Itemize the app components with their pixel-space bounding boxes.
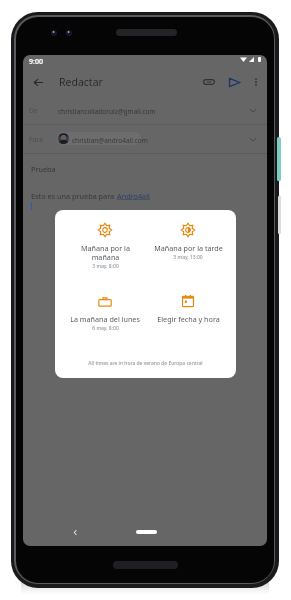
staticText: Mañana por la mañana (81, 243, 130, 262)
staticText: 6 may, 8:00 (92, 325, 119, 332)
button[interactable]: Home (116, 524, 176, 540)
staticText: christiancolladoruiz@gmail.com (58, 107, 156, 116)
button[interactable]: Redactar (55, 72, 107, 92)
staticText: Para (29, 135, 43, 144)
button[interactable]: More options (248, 74, 264, 90)
button[interactable]: Send (225, 73, 243, 91)
staticText: Redactar (59, 75, 103, 89)
staticText: Prueba (31, 164, 56, 174)
staticText: 3 may, 8:00 (92, 263, 119, 270)
staticText: 3 may, 13:00 (173, 254, 203, 261)
button[interactable]: Attach file (201, 74, 217, 90)
button[interactable]: Mañana por la tarde (146, 218, 230, 274)
staticText: La mañana del lunes (70, 314, 140, 324)
button[interactable]: La mañana del lunes (63, 289, 147, 345)
staticText: Elegir fecha y hora (157, 314, 220, 324)
staticText: christian@andro4all.com (72, 136, 148, 145)
staticText: Mañana por la tarde (154, 243, 223, 253)
staticText: De (29, 106, 38, 115)
button[interactable]: Back (66, 523, 84, 541)
button[interactable]: Elegir fecha y hora (146, 289, 230, 345)
staticText: Andro4all (117, 191, 150, 201)
button[interactable]: Back (28, 72, 48, 92)
button[interactable]: De (23, 96, 267, 125)
staticText: All times are in hora de verano de Europ… (55, 360, 236, 367)
button[interactable]: Para (23, 125, 267, 154)
staticText: Esto es una prueba para (31, 191, 117, 201)
button[interactable]: Mañana por la mañana (63, 218, 147, 274)
staticText: 9:00 (29, 57, 43, 67)
